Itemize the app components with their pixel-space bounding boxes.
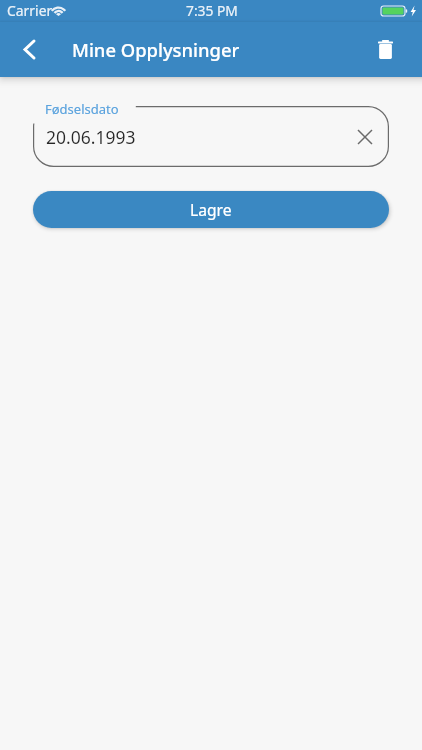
button[interactable]: Delete: [363, 27, 407, 71]
staticText: 7:35 PM: [186, 1, 238, 20]
button[interactable]: Back: [5, 25, 53, 73]
button[interactable]: Clear: [347, 119, 383, 155]
staticText: 20.06.1993: [46, 125, 136, 149]
button[interactable]: Lagre: [33, 191, 389, 228]
staticText: Mine Opplysninger: [72, 37, 240, 62]
staticText: Lagre: [190, 199, 232, 220]
staticText: Carrier: [7, 1, 53, 20]
staticText: Fødselsdato: [45, 100, 119, 118]
